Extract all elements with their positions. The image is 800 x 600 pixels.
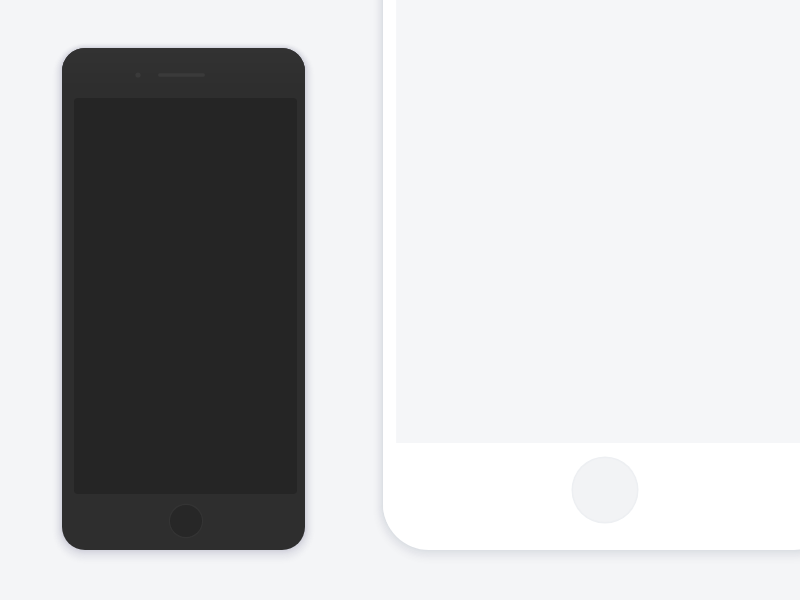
button[interactable]: Devices showcase	[0, 0, 800, 600]
